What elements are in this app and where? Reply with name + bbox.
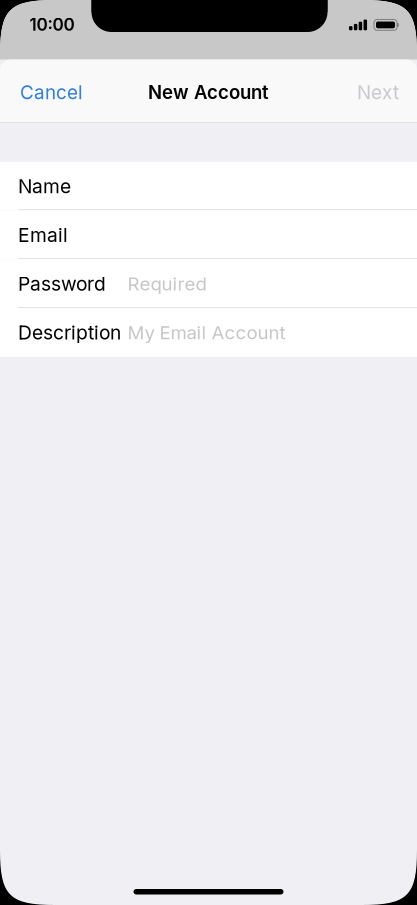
staticText: Cancel [20,81,83,104]
staticText: New Account [148,81,269,103]
button[interactable]: Password [0,259,417,308]
staticText: Password [18,272,106,295]
staticText: 10:00 [29,14,74,35]
button[interactable]: Name [0,162,417,211]
staticText: Next [357,81,399,104]
staticText: Name [18,175,71,198]
button[interactable]: Cancel [0,0,80,44]
staticText: Description [18,321,121,344]
staticText: My Email Account [127,321,285,344]
staticText: Required [127,272,206,295]
button[interactable]: Next [0,0,80,44]
button[interactable]: Description [0,308,417,357]
staticText: Email [18,223,68,247]
button[interactable]: Email [0,211,417,259]
